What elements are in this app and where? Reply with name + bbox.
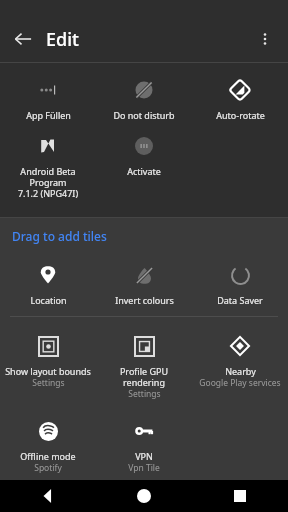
staticText: Profile GPU rendering <box>98 365 190 388</box>
button[interactable]: App Füllen <box>0 71 96 127</box>
staticText: Activate <box>127 165 161 177</box>
button[interactable]: Data Saver <box>192 256 288 312</box>
staticText: Android Beta Program 7.1.2 (NPG47I) <box>2 165 94 199</box>
button[interactable]: Nearby <box>192 327 288 395</box>
staticText: VPN <box>135 450 153 462</box>
button[interactable]: Back <box>0 16 46 62</box>
staticText: Invert colours <box>115 294 174 306</box>
staticText: Settings <box>128 388 161 400</box>
button[interactable]: Home <box>96 480 192 512</box>
button[interactable]: Auto-rotate <box>192 71 288 127</box>
staticText: Settings <box>32 377 65 389</box>
button[interactable]: Profile GPU rendering <box>96 327 192 406</box>
staticText: Spotify <box>34 462 62 474</box>
button[interactable]: Android Beta Program 7.1.2 (NPG47I) <box>0 127 96 205</box>
button[interactable]: Location <box>0 256 96 312</box>
button[interactable]: Show layout bounds <box>0 327 96 395</box>
staticText: Show layout bounds <box>5 365 91 377</box>
staticText: Nearby <box>225 365 256 377</box>
staticText: App Füllen <box>26 109 71 121</box>
staticText: Drag to add tiles <box>12 228 107 244</box>
staticText: Google Play services <box>199 377 281 389</box>
button[interactable]: Offline mode <box>0 412 96 480</box>
staticText: Auto-rotate <box>216 109 265 121</box>
staticText: Vpn Tile <box>128 462 160 474</box>
staticText: Offline mode <box>20 450 76 462</box>
button[interactable]: Activate <box>96 127 192 183</box>
button[interactable]: Invert colours <box>96 256 192 312</box>
staticText: Edit <box>46 27 79 52</box>
staticText: Do not disturb <box>113 109 175 121</box>
button[interactable]: Do not disturb <box>96 71 192 127</box>
button[interactable]: Recents <box>192 480 288 512</box>
staticText: Location <box>30 294 67 306</box>
button[interactable]: Back <box>0 480 96 512</box>
button[interactable]: VPN <box>96 412 192 480</box>
button[interactable]: More options <box>242 16 288 62</box>
staticText: Data Saver <box>217 294 263 306</box>
